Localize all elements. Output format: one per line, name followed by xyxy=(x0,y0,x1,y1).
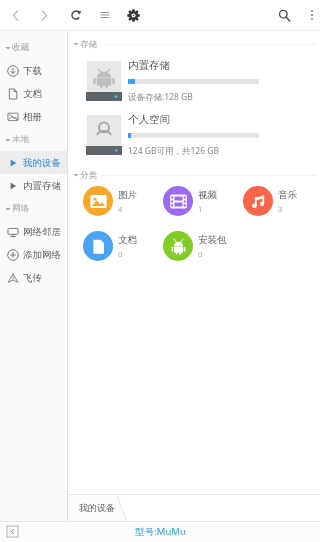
staticText: 设备存储:128 GB xyxy=(128,91,193,103)
staticText: 视频 xyxy=(198,189,217,201)
button[interactable]: Search xyxy=(271,0,298,30)
staticText: 添加网络 xyxy=(23,249,61,261)
staticText: 0 xyxy=(198,249,203,259)
button[interactable]: Settings xyxy=(120,0,147,30)
staticText: 网络邻居 xyxy=(23,226,61,238)
button[interactable]: Refresh xyxy=(62,0,89,30)
button[interactable]: 文档 xyxy=(0,82,67,105)
staticText: 124 GB可用，共126 GB xyxy=(128,145,220,157)
staticText: 分类 xyxy=(80,170,97,181)
staticText: 存储 xyxy=(80,39,97,50)
button[interactable]: Back xyxy=(2,0,29,30)
button[interactable]: 内置存储 xyxy=(68,54,320,108)
staticText: 4 xyxy=(118,204,123,214)
button[interactable]: Collapse sidebar xyxy=(7,526,18,537)
button[interactable]: More options xyxy=(298,0,320,30)
button[interactable]: List view xyxy=(91,0,118,30)
button[interactable]: 视频 xyxy=(163,186,228,216)
button[interactable]: 我的设备 xyxy=(0,151,67,174)
button[interactable]: 网络邻居 xyxy=(0,220,67,243)
staticText: 图片 xyxy=(118,189,137,201)
staticText: 相册 xyxy=(23,111,42,123)
staticText: 我的设备 xyxy=(79,502,115,513)
button[interactable]: 内置存储 xyxy=(0,174,67,197)
staticText: 安装包 xyxy=(198,234,227,246)
staticText: 音乐 xyxy=(278,189,297,201)
staticText: 文档 xyxy=(118,234,137,246)
staticText: 文档 xyxy=(23,88,42,100)
button[interactable]: 文档 xyxy=(83,231,148,261)
staticText: 我的设备 xyxy=(23,157,61,169)
button[interactable]: 安装包 xyxy=(163,231,228,261)
staticText: 收藏 xyxy=(12,42,29,53)
button[interactable]: 添加网络 xyxy=(0,243,67,266)
button[interactable]: 图片 xyxy=(83,186,148,216)
button[interactable]: 我的设备 xyxy=(68,494,127,521)
staticText: 个人空间 xyxy=(128,113,170,126)
button[interactable]: 个人空间 xyxy=(68,108,320,162)
staticText: 本地 xyxy=(12,134,29,145)
staticText: 型号:MuMu xyxy=(135,525,186,538)
staticText: 3 xyxy=(278,204,283,214)
staticText: 下载 xyxy=(23,65,42,77)
staticText: 内置存储 xyxy=(23,180,61,192)
staticText: 0 xyxy=(118,249,123,259)
button[interactable]: 音乐 xyxy=(243,186,308,216)
staticText: 飞传 xyxy=(23,272,42,284)
button[interactable]: 飞传 xyxy=(0,266,67,289)
button[interactable]: 下载 xyxy=(0,59,67,82)
button[interactable]: Forward xyxy=(31,0,58,30)
button[interactable]: 相册 xyxy=(0,105,67,128)
staticText: 网络 xyxy=(12,203,29,214)
staticText: 内置存储 xyxy=(128,59,170,72)
staticText: 1 xyxy=(198,204,203,214)
